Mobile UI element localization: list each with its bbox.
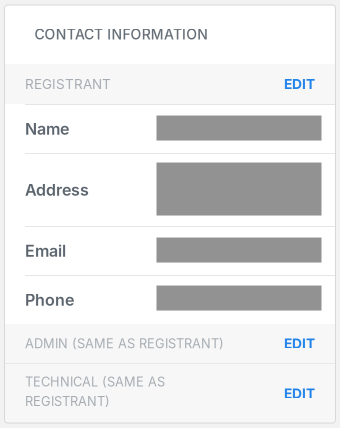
staticText: TECHNICAL (SAME AS [25, 374, 165, 389]
staticText: Phone [25, 290, 74, 310]
button[interactable]: REGISTRANT [4, 64, 335, 104]
staticText: ADMIN (SAME AS REGISTRANT) [25, 336, 224, 351]
staticText: Address [25, 180, 89, 200]
button[interactable]: Phone [4, 275, 335, 324]
button[interactable]: Address [4, 153, 335, 226]
staticText: CONTACT INFORMATION [34, 26, 208, 43]
staticText: EDIT [284, 335, 315, 352]
staticText: REGISTRANT) [25, 393, 110, 409]
staticText: EDIT [284, 76, 315, 92]
button[interactable]: Email [4, 226, 335, 275]
staticText: Email [25, 241, 66, 261]
button[interactable]: ADMIN (SAME AS REGISTRANT) [4, 324, 335, 363]
staticText: Name [25, 119, 69, 139]
button[interactable]: TECHNICAL (SAME AS [4, 363, 335, 423]
staticText: EDIT [284, 385, 315, 402]
button[interactable]: Name [4, 104, 335, 153]
staticText: REGISTRANT [25, 76, 111, 92]
